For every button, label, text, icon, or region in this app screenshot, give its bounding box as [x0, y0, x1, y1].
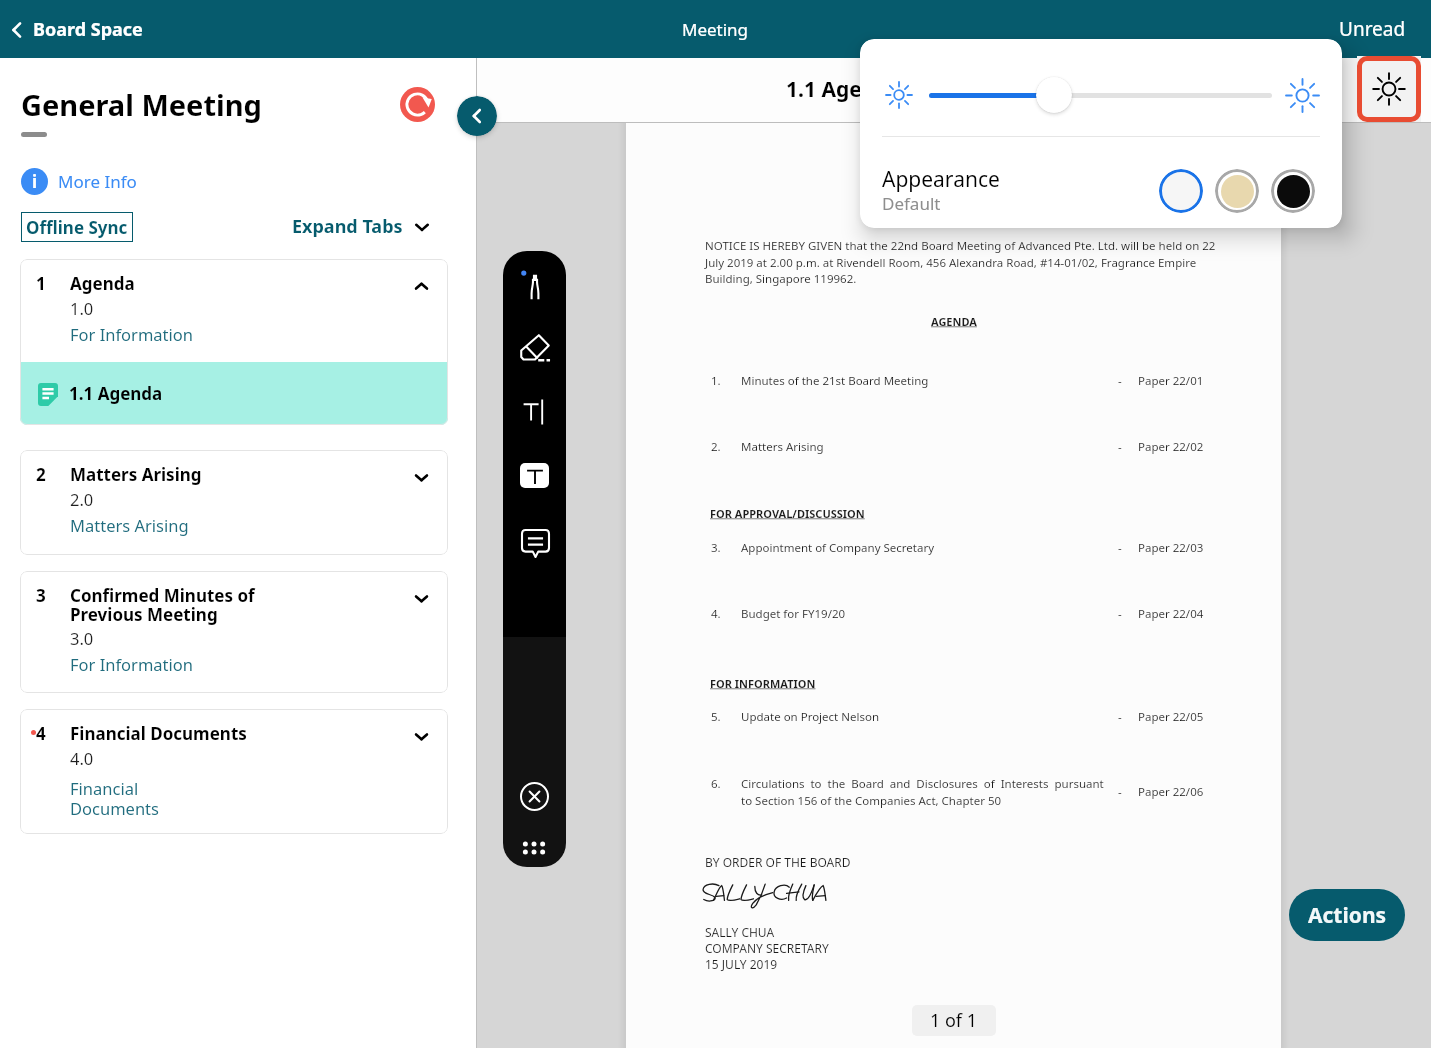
- staticText: 1.1 Agenda: [69, 382, 163, 405]
- staticText: Budget for FY19/20: [741, 606, 1113, 622]
- staticText: Update on Project Nelson: [741, 709, 1113, 725]
- staticText: Paper 22/06: [1138, 784, 1204, 800]
- staticText: 6.: [711, 776, 721, 792]
- button[interactable]: Unread: [1323, 8, 1431, 50]
- staticText: Financial Documents: [70, 722, 380, 745]
- staticText: 2.: [711, 439, 721, 455]
- staticText: Paper 22/04: [1138, 606, 1204, 622]
- staticText: Paper 22/05: [1138, 709, 1204, 725]
- button[interactable]: Move toolbar: [514, 828, 554, 867]
- staticText: Appearance: [882, 165, 1000, 194]
- button[interactable]: 2: [20, 450, 448, 555]
- staticText: Expand Tabs: [292, 214, 403, 239]
- staticText: Agenda: [70, 272, 135, 295]
- staticText: Paper 22/02: [1138, 439, 1204, 455]
- staticText: Default: [882, 192, 941, 215]
- staticText: Meeting: [682, 18, 749, 41]
- staticText: 1.1 Agenda: [786, 75, 902, 104]
- staticText: 1.: [711, 373, 721, 389]
- button[interactable]: 3: [20, 571, 448, 693]
- button[interactable]: Collapse panel: [457, 96, 497, 136]
- button[interactable]: Text annotation: [512, 389, 558, 435]
- staticText: AGENDA: [931, 314, 977, 329]
- staticText: Minutes of the 21st Board Meeting: [741, 373, 1113, 389]
- staticText: More Info: [58, 170, 137, 193]
- staticText: Circulations to the Board and Disclosure…: [741, 776, 1113, 808]
- staticText: FOR INFORMATION: [710, 676, 816, 691]
- button[interactable]: Sepia appearance: [1215, 169, 1259, 213]
- staticText: 3.: [711, 540, 721, 556]
- button[interactable]: Expand Tabs: [292, 210, 431, 243]
- staticText: General Meeting: [21, 85, 262, 124]
- button[interactable]: 4: [20, 709, 448, 834]
- staticText: Financial Documents: [70, 777, 159, 820]
- staticText: 4: [36, 722, 46, 745]
- staticText: Appointment of Company Secretary: [741, 540, 1113, 556]
- button[interactable]: Comment: [512, 520, 558, 566]
- staticText: 1.0: [70, 297, 94, 319]
- staticText: Actions: [1308, 901, 1387, 930]
- staticText: Board Space: [33, 17, 143, 42]
- staticText: SALLY CHUA COMPANY SECRETARY 15 JULY 201…: [705, 924, 829, 972]
- button[interactable]: Dark appearance: [1271, 169, 1315, 213]
- staticText: FOR APPROVAL/DISCUSSION: [710, 506, 865, 521]
- staticText: Matters Arising: [741, 439, 1113, 455]
- staticText: Offline Sync: [26, 216, 128, 239]
- staticText: 2.0: [70, 488, 94, 510]
- button[interactable]: i: [21, 166, 145, 197]
- button[interactable]: Offline Sync: [21, 212, 133, 242]
- button[interactable]: Brightness: [1357, 56, 1421, 122]
- staticText: 3: [36, 584, 46, 607]
- staticText: 1 of 1: [930, 1008, 978, 1033]
- button[interactable]: Actions: [1289, 889, 1405, 941]
- staticText: 5.: [711, 709, 721, 725]
- button[interactable]: Eraser: [512, 325, 558, 371]
- staticText: -: [1118, 373, 1122, 389]
- staticText: -: [1118, 709, 1122, 725]
- staticText: Matters Arising: [70, 463, 380, 486]
- button[interactable]: Close toolbar: [512, 774, 556, 818]
- button[interactable]: Brightness level: [1036, 77, 1072, 113]
- staticText: 2: [36, 463, 46, 486]
- button[interactable]: 1.1 Agenda: [20, 362, 448, 425]
- staticText: Paper 22/01: [1138, 373, 1204, 389]
- staticText: -: [1118, 439, 1122, 455]
- staticText: 4.: [711, 606, 721, 622]
- staticText: Confirmed Minutes of Previous Meeting: [70, 584, 380, 626]
- staticText: 1: [36, 272, 46, 295]
- staticText: BY ORDER OF THE BOARD: [705, 854, 851, 870]
- staticText: -: [1118, 540, 1122, 556]
- button[interactable]: Board Space: [0, 10, 157, 49]
- staticText: -: [1118, 606, 1122, 622]
- staticText: Unread: [1339, 16, 1406, 42]
- staticText: NOTICE IS HEREBY GIVEN that the 22nd Boa…: [705, 238, 1217, 286]
- staticText: 4.0: [70, 747, 94, 769]
- staticText: For Information: [70, 323, 193, 345]
- button[interactable]: 1: [20, 259, 448, 362]
- button[interactable]: Default appearance: [1159, 169, 1203, 213]
- staticText: 3.0: [70, 627, 94, 649]
- button[interactable]: Refresh: [400, 87, 435, 122]
- staticText: -: [1118, 784, 1122, 800]
- button[interactable]: Text box: [520, 463, 549, 488]
- staticText: Paper 22/03: [1138, 540, 1204, 556]
- staticText: For Information: [70, 653, 193, 675]
- staticText: i: [32, 170, 38, 193]
- staticText: Matters Arising: [70, 514, 189, 536]
- button[interactable]: Pen: [512, 261, 558, 307]
